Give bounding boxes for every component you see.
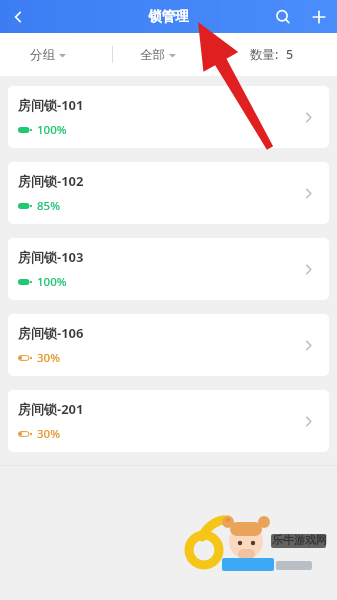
- staticText: 房间锁-106: [18, 324, 84, 342]
- button[interactable]: 房间锁-201: [8, 390, 329, 452]
- staticText: 100%: [37, 122, 67, 138]
- button[interactable]: Back: [0, 0, 36, 33]
- button[interactable]: 全部: [134, 41, 182, 69]
- staticText: 全部: [140, 47, 165, 63]
- staticText: 房间锁-201: [18, 400, 84, 418]
- other: Open 房间锁-101: [297, 106, 319, 128]
- other: Open 房间锁-103: [297, 258, 319, 280]
- button[interactable]: 房间锁-102: [8, 162, 329, 224]
- staticText: 100%: [37, 274, 67, 290]
- staticText: 房间锁-102: [18, 172, 84, 190]
- button[interactable]: 房间锁-106: [8, 314, 329, 376]
- other: Open 房间锁-106: [297, 334, 319, 356]
- staticText: 30%: [37, 350, 60, 366]
- staticText: 锁管理: [148, 8, 189, 25]
- staticText: 5: [286, 46, 294, 63]
- staticText: 分组: [30, 47, 55, 63]
- button[interactable]: 房间锁-103: [8, 238, 329, 300]
- staticText: 乐牛游戏网: [272, 533, 327, 547]
- staticText: 30%: [37, 426, 60, 442]
- staticText: 数量:: [250, 46, 279, 63]
- staticText: 房间锁-101: [18, 96, 84, 114]
- other: Open 房间锁-102: [297, 182, 319, 204]
- button[interactable]: 房间锁-101: [8, 86, 329, 148]
- button[interactable]: Add: [301, 0, 337, 33]
- button[interactable]: 分组: [24, 41, 72, 69]
- staticText: 房间锁-103: [18, 248, 84, 266]
- other: Open 房间锁-201: [297, 410, 319, 432]
- button[interactable]: Search: [265, 0, 301, 33]
- staticText: 85%: [37, 198, 60, 214]
